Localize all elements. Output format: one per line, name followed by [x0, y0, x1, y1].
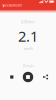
button[interactable]: Route [5, 71, 18, 83]
staticText: 0.00 km [21, 19, 35, 24]
staticText: Speedometer [2, 4, 22, 7]
staticText: km/h [23, 46, 32, 51]
staticText: 2.1 [18, 26, 38, 46]
button[interactable]: Stop [21, 71, 34, 83]
staticText: 0 min [23, 63, 33, 68]
button[interactable]: Share [38, 71, 51, 83]
